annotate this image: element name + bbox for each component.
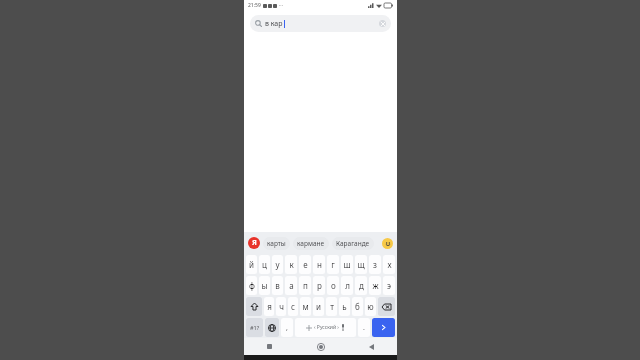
- staticText: р: [317, 280, 322, 291]
- button[interactable]: ю: [365, 297, 376, 316]
- button[interactable]: п: [299, 276, 311, 295]
- staticText: в кар: [265, 19, 283, 29]
- button[interactable]: л: [341, 276, 353, 295]
- button[interactable]: Back: [346, 338, 397, 355]
- button[interactable]: н: [313, 255, 325, 274]
- button[interactable]: к: [285, 255, 297, 274]
- button[interactable]: й: [246, 255, 257, 274]
- staticText: и: [316, 301, 321, 312]
- button[interactable]: Yandex: [248, 237, 260, 249]
- staticText: Караганде: [336, 239, 370, 248]
- staticText: 21:59: [248, 2, 261, 9]
- button[interactable]: Recents: [244, 338, 295, 355]
- staticText: с: [291, 301, 295, 312]
- button[interactable]: Shift: [246, 297, 262, 316]
- button[interactable]: Backspace: [378, 297, 395, 316]
- staticText: г: [331, 259, 335, 270]
- staticText: л: [345, 280, 350, 291]
- staticText: ц: [262, 259, 267, 270]
- button[interactable]: х: [383, 255, 395, 274]
- button[interactable]: г: [327, 255, 339, 274]
- staticText: .: [363, 323, 365, 333]
- button[interactable]: Search: [372, 318, 395, 337]
- staticText: кармане: [297, 239, 325, 248]
- button[interactable]: Clear: [379, 20, 386, 27]
- staticText: ш: [343, 259, 351, 270]
- button[interactable]: е: [299, 255, 311, 274]
- button[interactable]: с: [288, 297, 298, 316]
- staticText: щ: [357, 259, 365, 270]
- staticText: в: [275, 280, 280, 291]
- staticText: е: [303, 259, 308, 270]
- staticText: б: [355, 301, 360, 312]
- button[interactable]: и: [313, 297, 324, 316]
- button[interactable]: я: [264, 297, 274, 316]
- button[interactable]: ь: [339, 297, 350, 316]
- button[interactable]: ч: [276, 297, 286, 316]
- staticText: о: [331, 280, 336, 291]
- button[interactable]: щ: [355, 255, 367, 274]
- button[interactable]: о: [327, 276, 339, 295]
- button[interactable]: Home: [295, 338, 346, 355]
- staticText: Я: [252, 238, 257, 248]
- button[interactable]: м: [300, 297, 311, 316]
- button[interactable]: ц: [259, 255, 270, 274]
- button[interactable]: ф: [246, 276, 257, 295]
- button[interactable]: #1?: [246, 318, 263, 337]
- button[interactable]: р: [313, 276, 325, 295]
- staticText: й: [249, 259, 254, 270]
- button[interactable]: а: [285, 276, 297, 295]
- button[interactable]: Space: [295, 318, 356, 337]
- staticText: ы: [261, 280, 268, 291]
- staticText: я: [267, 301, 272, 312]
- button[interactable]: кармане: [293, 237, 329, 250]
- button[interactable]: б: [352, 297, 363, 316]
- staticText: ж: [372, 280, 379, 291]
- button[interactable]: ы: [259, 276, 270, 295]
- button[interactable]: в кар: [250, 15, 391, 32]
- staticText: х: [387, 259, 392, 270]
- staticText: карты: [267, 239, 286, 248]
- staticText: п: [303, 280, 308, 291]
- staticText: м: [302, 301, 309, 312]
- button[interactable]: з: [369, 255, 381, 274]
- button[interactable]: д: [355, 276, 367, 295]
- staticText: к: [289, 259, 294, 270]
- staticText: ч: [279, 301, 284, 312]
- staticText: ‹ Русский ›: [314, 324, 339, 331]
- button[interactable]: ш: [341, 255, 353, 274]
- staticText: ф: [249, 280, 255, 291]
- staticText: #1?: [250, 324, 260, 331]
- button[interactable]: Emoji: [382, 238, 393, 249]
- staticText: з: [373, 259, 377, 270]
- button[interactable]: т: [326, 297, 337, 316]
- staticText: д: [359, 280, 364, 291]
- staticText: у: [275, 259, 280, 270]
- button[interactable]: ,: [281, 318, 293, 337]
- staticText: ···: [279, 2, 284, 9]
- staticText: ь: [342, 301, 347, 312]
- button[interactable]: в: [272, 276, 283, 295]
- staticText: а: [289, 280, 294, 291]
- button[interactable]: э: [383, 276, 395, 295]
- button[interactable]: ж: [369, 276, 381, 295]
- staticText: ю: [367, 301, 374, 312]
- button[interactable]: Change language: [265, 318, 279, 337]
- staticText: т: [330, 301, 334, 312]
- staticText: ,: [286, 323, 288, 333]
- button[interactable]: карты: [263, 237, 290, 250]
- button[interactable]: .: [358, 318, 370, 337]
- staticText: э: [387, 280, 391, 291]
- button[interactable]: Караганде: [332, 237, 374, 250]
- button[interactable]: у: [272, 255, 283, 274]
- staticText: н: [317, 259, 322, 270]
